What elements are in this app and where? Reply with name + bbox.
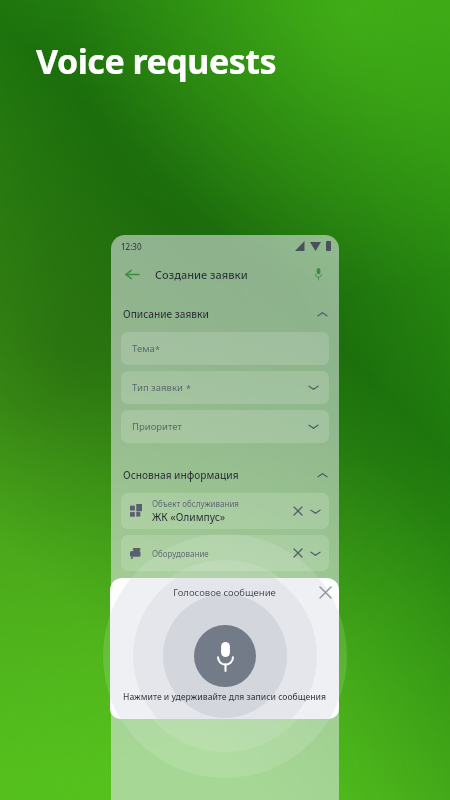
button[interactable]: Основная информация <box>123 460 327 490</box>
button[interactable]: Оборудование <box>121 535 329 571</box>
staticText: Тема <box>132 342 155 355</box>
button[interactable]: Back <box>121 263 143 285</box>
staticText: Нажмите и удерживайте для записи сообщен… <box>123 691 326 703</box>
staticText: * <box>186 382 191 394</box>
button[interactable]: Приоритет <box>121 410 329 443</box>
staticText: Основная информация <box>123 468 239 482</box>
button[interactable]: Тип заявки <box>121 371 329 404</box>
staticText: Приоритет <box>132 420 182 433</box>
staticText: Голосовое сообщение <box>173 586 276 599</box>
staticText: Создание заявки <box>155 267 248 282</box>
button[interactable]: Close <box>311 578 339 606</box>
button[interactable]: Clear <box>291 546 305 560</box>
button[interactable]: Hold to record voice message <box>194 625 256 687</box>
button[interactable]: Описание заявки <box>123 299 327 329</box>
button[interactable]: Объект обслуживания <box>121 493 329 529</box>
staticText: Объект обслуживания <box>152 498 239 509</box>
staticText: Тип заявки <box>132 381 186 394</box>
button[interactable]: Clear <box>291 504 305 518</box>
button[interactable]: Voice input <box>307 263 329 285</box>
staticText: Оборудование <box>152 548 209 559</box>
button[interactable]: Тема <box>121 332 329 365</box>
staticText: Voice requests <box>36 38 277 84</box>
staticText: * <box>155 343 160 355</box>
staticText: ЖК «Олимпус» <box>152 510 226 524</box>
staticText: 12:30 <box>121 241 142 252</box>
staticText: Описание заявки <box>123 307 209 321</box>
